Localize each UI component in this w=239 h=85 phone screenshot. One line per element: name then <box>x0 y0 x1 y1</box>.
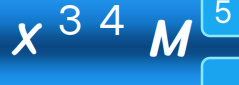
staticText: 5 <box>214 0 232 30</box>
staticText: M <box>149 0 193 85</box>
button[interactable]: 5 <box>202 0 239 36</box>
staticText: 3 <box>57 0 82 45</box>
button[interactable]: Next question <box>202 58 239 85</box>
staticText: 4 <box>99 0 125 45</box>
staticText: X <box>13 0 43 79</box>
